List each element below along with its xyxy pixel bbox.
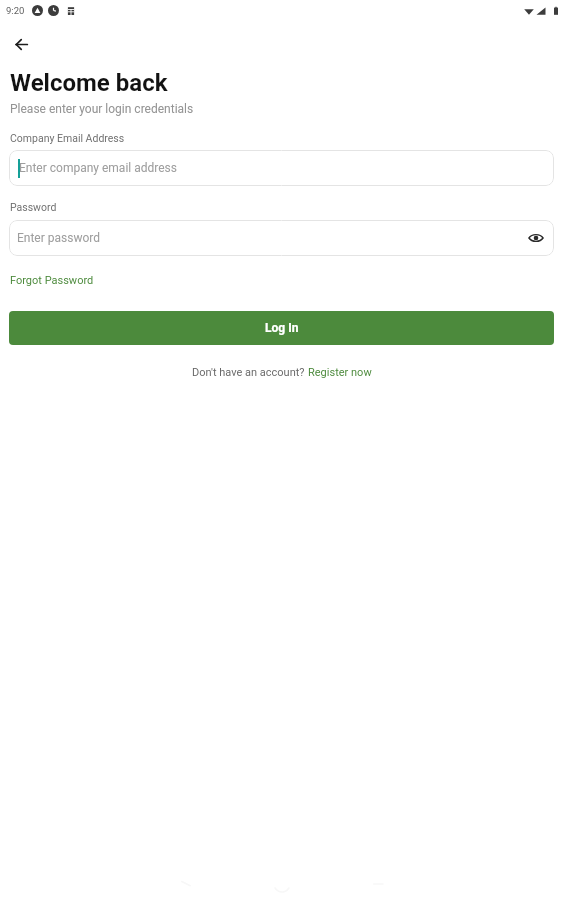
button[interactable]: Register now [308, 366, 372, 379]
staticText: Don't have an account? [192, 366, 308, 379]
button[interactable]: Forgot Password [10, 274, 94, 287]
staticText: Register now [308, 366, 372, 379]
staticText: Company Email Address [10, 132, 125, 144]
staticText: Forgot Password [10, 274, 94, 287]
staticText: Enter company email address [19, 161, 177, 175]
staticText: Log In [265, 321, 299, 335]
staticText: Password [10, 201, 57, 213]
staticText: Welcome back [10, 69, 168, 97]
staticText: Please enter your login credentials [10, 102, 194, 116]
button[interactable]: Enter company email address [9, 150, 554, 186]
staticText: Enter password [17, 231, 101, 245]
staticText: 9:20 [6, 5, 25, 16]
button[interactable]: Back [6, 29, 36, 59]
button[interactable]: Log In [9, 311, 554, 345]
button[interactable]: Show password [525, 227, 547, 249]
button[interactable]: Enter password [9, 220, 554, 256]
